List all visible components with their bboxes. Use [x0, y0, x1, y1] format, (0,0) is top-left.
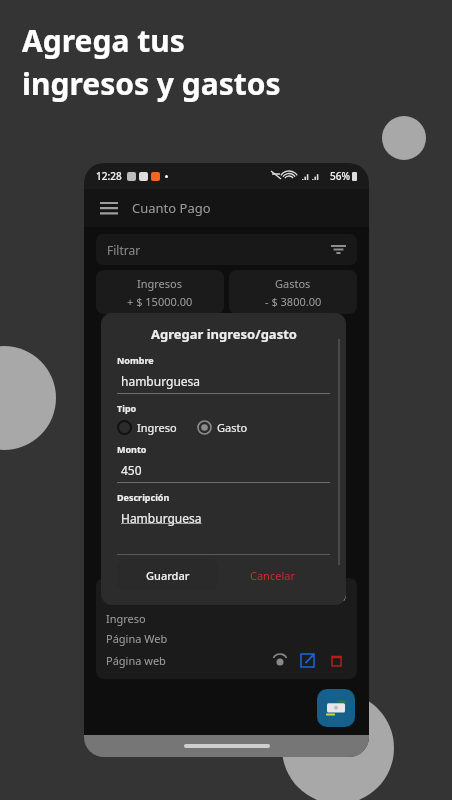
- staticText: Filtrar: [107, 242, 141, 258]
- staticText: hamburguesa: [121, 373, 201, 389]
- button[interactable]: Ingresos: [96, 270, 224, 314]
- staticText: Cancelar: [250, 568, 295, 583]
- staticText: Ingreso: [106, 611, 146, 626]
- staticText: + $ 15000.00: [127, 294, 193, 309]
- button[interactable]: Ver: [269, 649, 291, 671]
- staticText: Ingreso: [137, 420, 177, 435]
- button[interactable]: Eliminar: [325, 649, 347, 671]
- staticText: Agrega tus: [22, 20, 185, 61]
- button[interactable]: Gasto: [197, 418, 248, 437]
- staticText: Cuanto Pago: [132, 199, 211, 217]
- staticText: 56%: [330, 169, 350, 183]
- button[interactable]: Ingreso: [117, 418, 177, 437]
- staticText: Gastos: [275, 276, 311, 291]
- staticText: 450: [121, 462, 142, 478]
- staticText: 12:28: [96, 169, 122, 183]
- staticText: Guardar: [146, 568, 190, 583]
- staticText: Página Web: [106, 631, 168, 646]
- button[interactable]: Editar: [297, 649, 319, 671]
- staticText: - $ 3800.00: [265, 294, 322, 309]
- staticText: Nombre: [117, 354, 154, 366]
- button[interactable]: Agregar: [317, 689, 355, 727]
- staticText: Descripción: [117, 491, 170, 503]
- button[interactable]: Guardar: [117, 559, 218, 591]
- button[interactable]: Gastos: [229, 270, 357, 314]
- staticText: Gasto: [217, 420, 248, 435]
- staticText: + $ 15000.00: [263, 586, 347, 605]
- button[interactable]: Menu: [96, 195, 122, 221]
- staticText: Página web: [106, 653, 166, 668]
- staticText: Hamburguesa: [121, 510, 202, 526]
- button[interactable]: 23 feb 2025 - 12:27 p. m.: [96, 578, 357, 679]
- staticText: ingresos y gastos: [22, 63, 281, 104]
- button[interactable]: Filtrar: [96, 234, 357, 265]
- button[interactable]: Cancelar: [242, 560, 303, 591]
- staticText: Agregar ingreso/gasto: [151, 325, 297, 343]
- staticText: Monto: [117, 443, 147, 455]
- staticText: Ingresos: [137, 276, 183, 291]
- staticText: Tipo: [117, 402, 137, 414]
